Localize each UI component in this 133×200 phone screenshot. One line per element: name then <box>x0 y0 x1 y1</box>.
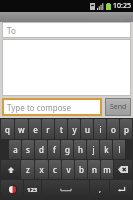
button[interactable]: b <box>75 160 87 179</box>
staticText: d <box>39 144 44 155</box>
staticText: Send <box>110 102 127 112</box>
button[interactable]: g <box>61 140 73 159</box>
staticText: f <box>53 144 56 155</box>
staticText: y <box>72 124 77 135</box>
button[interactable]: q <box>1 119 14 139</box>
button[interactable]: Change language <box>1 180 23 199</box>
button[interactable]: Shift <box>1 160 20 179</box>
staticText: h <box>78 144 83 155</box>
staticText: i <box>99 124 102 135</box>
button[interactable]: n <box>88 160 100 179</box>
staticText: u <box>85 124 90 135</box>
button[interactable]: t <box>55 119 67 139</box>
staticText: x <box>39 164 44 175</box>
staticText: r <box>46 124 50 135</box>
staticText: , <box>99 185 101 195</box>
staticText: c <box>53 164 57 175</box>
staticText: e <box>33 124 38 135</box>
button[interactable]: c <box>49 160 61 179</box>
staticText: n <box>92 164 97 175</box>
button[interactable]: u <box>81 119 93 139</box>
button[interactable]: d <box>35 140 47 159</box>
button[interactable]: o <box>107 119 119 139</box>
staticText: g <box>65 144 70 155</box>
button[interactable]: r <box>42 119 54 139</box>
button[interactable]: v <box>62 160 74 179</box>
staticText: q <box>5 124 10 135</box>
staticText: k <box>104 144 109 155</box>
staticText: b <box>79 164 84 175</box>
staticText: w <box>18 124 25 135</box>
button[interactable]: x <box>35 160 48 179</box>
button[interactable]: w <box>15 119 28 139</box>
staticText: m <box>103 164 111 175</box>
button[interactable]: Numbers <box>24 180 41 199</box>
button[interactable]: e <box>29 119 41 139</box>
staticText: To <box>7 25 16 36</box>
button[interactable]: h <box>74 140 86 159</box>
button[interactable]: p <box>120 119 132 139</box>
staticText: s <box>26 144 30 155</box>
staticText: t <box>60 124 63 135</box>
button[interactable]: i <box>94 119 106 139</box>
button[interactable]: f <box>48 140 60 159</box>
staticText: o <box>111 124 116 135</box>
button[interactable]: Comma <box>90 180 109 199</box>
staticText: 123 <box>27 186 38 194</box>
staticText: j <box>92 144 95 155</box>
staticText: Type to compose <box>7 102 71 113</box>
button[interactable]: a <box>9 140 21 159</box>
staticText: p <box>124 124 129 135</box>
button[interactable]: m <box>101 160 113 179</box>
button[interactable]: Type to compose <box>2 98 102 116</box>
staticText: a <box>13 144 18 155</box>
button[interactable]: z <box>21 160 34 179</box>
button[interactable]: j <box>87 140 99 159</box>
button[interactable]: Enter <box>110 180 132 199</box>
button[interactable]: Delete <box>114 160 132 179</box>
button[interactable]: Space <box>42 180 89 199</box>
button[interactable]: y <box>68 119 80 139</box>
staticText: z <box>26 164 30 175</box>
staticText: v <box>66 164 71 175</box>
button[interactable]: s <box>22 140 34 159</box>
staticText: l <box>118 144 121 155</box>
button[interactable]: Send <box>105 98 131 116</box>
staticText: 10:25 <box>113 1 131 11</box>
staticText: New message <box>87 13 127 21</box>
button[interactable]: To <box>2 22 131 38</box>
button[interactable]: k <box>100 140 112 159</box>
button[interactable]: l <box>113 140 125 159</box>
